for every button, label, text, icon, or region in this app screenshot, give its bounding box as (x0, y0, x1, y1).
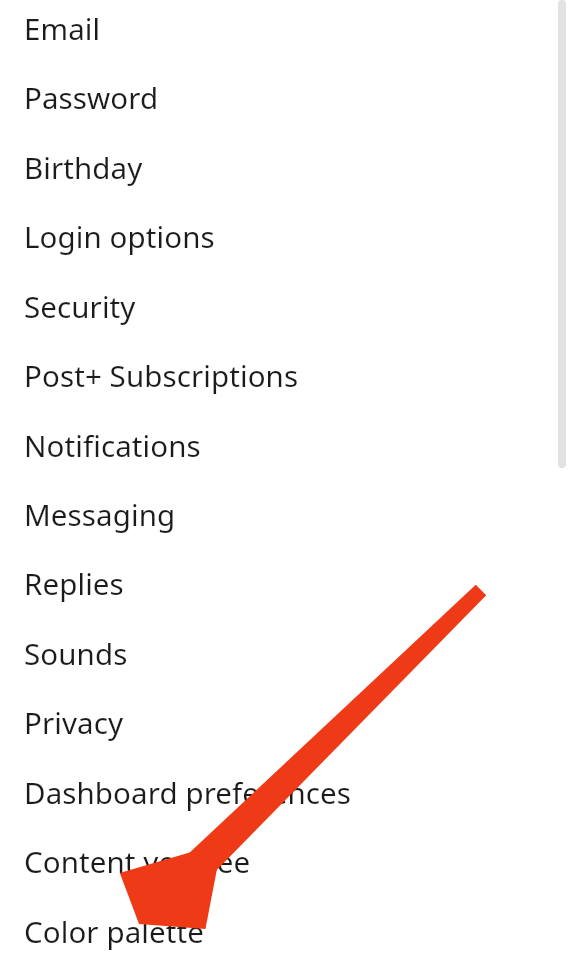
button[interactable]: Content you see (0, 826, 569, 895)
button[interactable]: Security (0, 271, 569, 340)
staticText: Login options (24, 216, 215, 256)
button[interactable]: Password (0, 62, 569, 131)
staticText: Security (24, 286, 136, 326)
staticText: Post+ Subscriptions (24, 355, 299, 395)
button[interactable]: Privacy (0, 687, 569, 756)
staticText: Sounds (24, 633, 128, 673)
staticText: Notifications (24, 425, 201, 465)
button[interactable]: Login options (0, 201, 569, 270)
button[interactable]: Birthday (0, 132, 569, 201)
staticText: Replies (24, 563, 124, 603)
button[interactable]: Color palette (0, 896, 569, 960)
staticText: Privacy (24, 702, 124, 742)
button[interactable]: Email (0, 0, 569, 62)
staticText: Messaging (24, 494, 176, 534)
staticText: Birthday (24, 147, 143, 187)
button[interactable]: Sounds (0, 618, 569, 687)
button[interactable]: Dashboard preferences (0, 757, 569, 826)
staticText: Content you see (24, 841, 251, 881)
button[interactable]: Notifications (0, 410, 569, 479)
staticText: Password (24, 77, 159, 117)
staticText: Email (24, 8, 101, 48)
staticText: Color palette (24, 911, 204, 951)
other: Annotation arrow pointing to Content you… (0, 0, 569, 960)
button[interactable]: Replies (0, 548, 569, 617)
staticText: Dashboard preferences (24, 772, 352, 812)
button[interactable]: Messaging (0, 479, 569, 548)
button[interactable]: Post+ Subscriptions (0, 340, 569, 409)
